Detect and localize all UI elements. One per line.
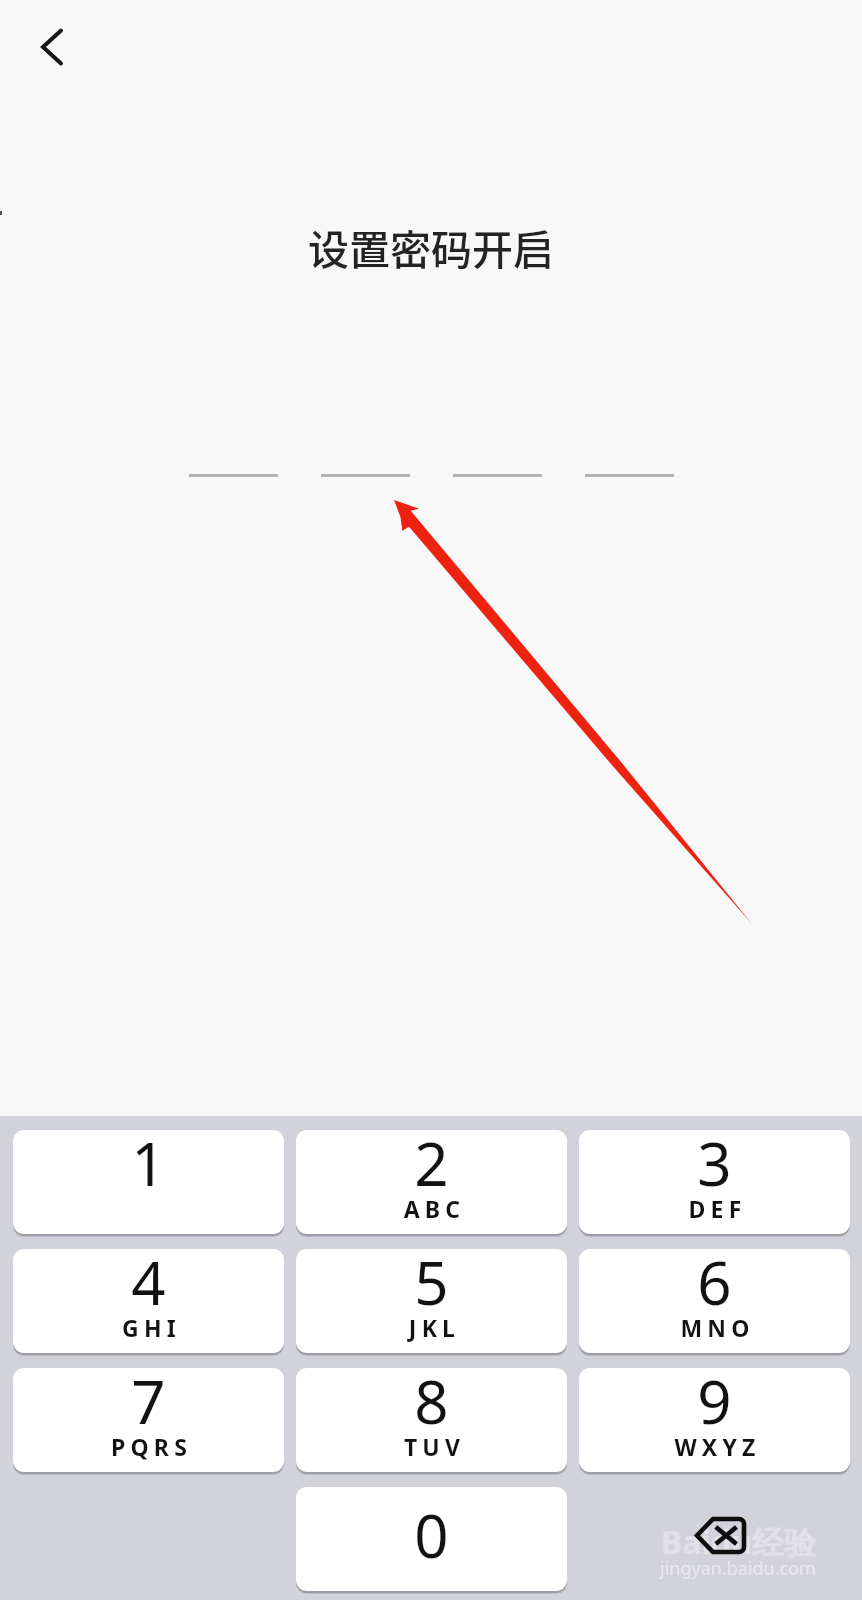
button[interactable]: 2 ABC — [296, 1130, 567, 1234]
staticText: ABC — [299, 1193, 567, 1224]
button[interactable]: 7 PQRS — [13, 1368, 284, 1472]
staticText: JKL — [299, 1312, 567, 1343]
staticText: GHI — [16, 1312, 284, 1343]
button[interactable]: 8 TUV — [296, 1368, 567, 1472]
staticText: 8 — [296, 1368, 567, 1442]
staticText: jingyan.baidu.com — [660, 1556, 816, 1581]
button[interactable]: 4 GHI — [13, 1249, 284, 1353]
staticText: 4 — [13, 1249, 284, 1323]
staticText: 0 — [296, 1494, 567, 1576]
button[interactable]: 3 DEF — [579, 1130, 850, 1234]
staticText: 1 — [13, 1130, 284, 1204]
staticText: 9 — [579, 1368, 850, 1442]
staticText: 2 — [296, 1130, 567, 1204]
staticText: DEF — [582, 1193, 850, 1224]
button[interactable]: Back — [10, 10, 84, 84]
staticText: Baidu经验 — [661, 1520, 817, 1564]
staticText: 5 — [296, 1249, 567, 1323]
button[interactable]: 0 — [296, 1487, 567, 1591]
button[interactable]: 9 WXYZ — [579, 1368, 850, 1472]
button[interactable]: 5 JKL — [296, 1249, 567, 1353]
staticText: 7 — [13, 1368, 284, 1442]
staticText: TUV — [299, 1431, 567, 1462]
staticText: WXYZ — [582, 1431, 850, 1462]
staticText: MNO — [582, 1312, 850, 1343]
staticText: 3 — [579, 1130, 850, 1204]
staticText: PQRS — [16, 1431, 284, 1462]
button[interactable]: Backspace — [579, 1487, 850, 1591]
button[interactable]: 6 MNO — [579, 1249, 850, 1353]
staticText: 设置密码开启 — [0, 217, 862, 276]
button[interactable]: 1 — [13, 1130, 284, 1234]
staticText: 6 — [579, 1249, 850, 1323]
